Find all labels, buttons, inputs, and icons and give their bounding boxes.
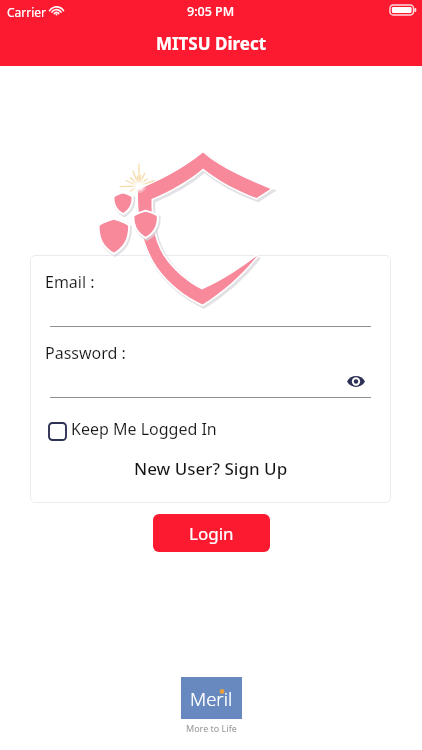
staticText: Email : [45,271,95,293]
staticText: Password : [45,342,126,364]
staticText: Login [189,522,234,545]
staticText: More to Life [186,722,237,734]
staticText: 9:05 PM [187,3,235,20]
button[interactable]: Keep Me Logged In [45,416,217,442]
staticText: Carrier [7,4,47,20]
button[interactable]: New User? Sign Up [128,455,294,482]
staticText: MITSU Direct [0,32,422,55]
button[interactable]: Show password [344,369,368,393]
button[interactable]: Login [153,514,270,552]
staticText: Keep Me Logged In [71,418,217,440]
staticText: Meril [190,686,233,711]
